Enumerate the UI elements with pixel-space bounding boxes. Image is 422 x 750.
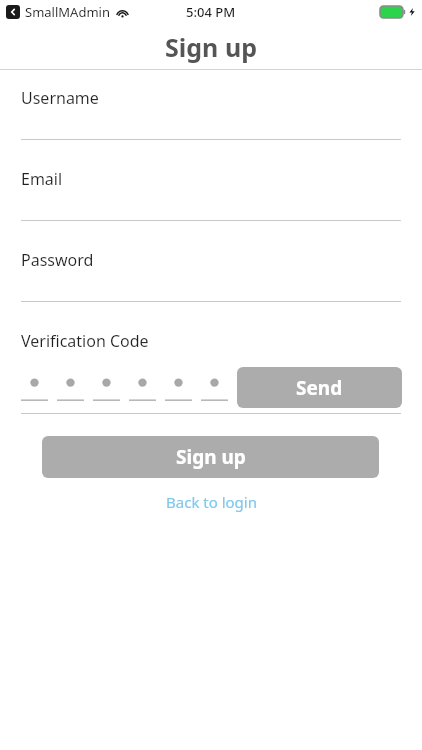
- staticText: Username: [21, 87, 99, 109]
- staticText: Send: [296, 375, 343, 401]
- button[interactable]: Back to SmallMAdmin: [6, 5, 20, 19]
- staticText: 5:04 PM: [186, 3, 236, 21]
- staticText: Email: [21, 168, 63, 190]
- staticText: Sign up: [165, 30, 257, 64]
- button[interactable]: Send: [237, 367, 402, 408]
- staticText: Sign up: [176, 444, 246, 470]
- staticText: Verification Code: [21, 330, 149, 352]
- button[interactable]: Back to login: [156, 490, 267, 514]
- button[interactable]: Sign up: [42, 436, 379, 478]
- button[interactable]: [21, 365, 231, 409]
- staticText: Password: [21, 249, 94, 271]
- staticText: Back to login: [166, 492, 257, 512]
- staticText: SmallMAdmin: [25, 3, 110, 21]
